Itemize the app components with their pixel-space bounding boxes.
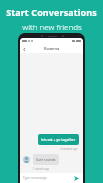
button[interactable]: Contact avatar: [23, 156, 30, 163]
staticText: Rowena: [44, 46, 60, 51]
staticText: lets eat + go together: [41, 137, 76, 142]
button[interactable]: Send: [73, 175, 80, 182]
staticText: Sure sounds: [36, 157, 56, 162]
staticText: with new friends: [22, 21, 82, 32]
button[interactable]: Type a message: [23, 176, 73, 180]
staticText: Start Conversations: [6, 6, 97, 18]
button[interactable]: Sure sounds: [33, 154, 59, 165]
button[interactable]: lets eat + go together: [38, 134, 79, 145]
staticText: Type a message: [23, 176, 47, 180]
staticText: 3 minutes ago: [60, 147, 78, 151]
staticText: 1 minute ago: [33, 167, 50, 171]
button[interactable]: Back: [20, 45, 28, 53]
